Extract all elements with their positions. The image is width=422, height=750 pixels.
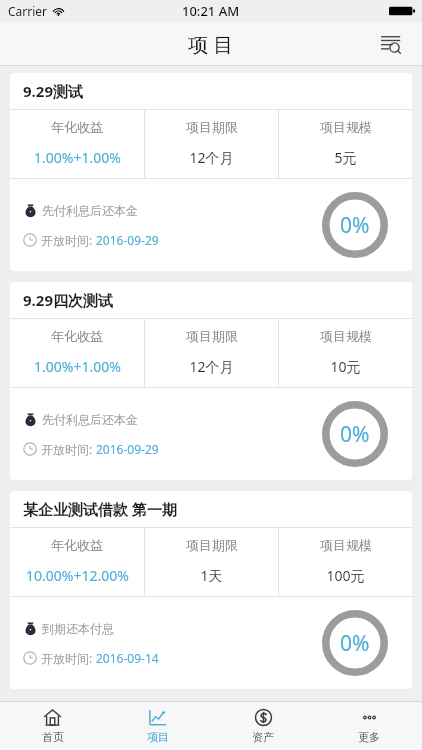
- staticText: 项目期限: [186, 328, 238, 344]
- staticText: 年化收益: [51, 537, 103, 553]
- staticText: 项 目: [188, 31, 234, 58]
- staticText: 项目规模: [320, 328, 372, 344]
- button[interactable]: 更多: [316, 702, 422, 750]
- staticText: 开放时间:: [41, 232, 96, 248]
- staticText: 10.00%+12.00%: [26, 566, 129, 585]
- staticText: 1.00%+1.00%: [34, 148, 121, 167]
- staticText: 更多: [358, 730, 380, 744]
- staticText: 0%: [340, 211, 370, 240]
- staticText: Carrier: [8, 3, 48, 19]
- staticText: 12个月: [189, 357, 234, 376]
- staticText: 开放时间:: [41, 441, 96, 457]
- staticText: 先付利息后还本金: [42, 412, 138, 427]
- button[interactable]: Filter and search: [374, 27, 408, 61]
- staticText: 100元: [326, 566, 365, 585]
- staticText: 首页: [42, 730, 64, 744]
- staticText: 资产: [252, 730, 274, 744]
- staticText: 10元: [330, 357, 361, 376]
- staticText: 年化收益: [51, 119, 103, 135]
- staticText: 0%: [340, 420, 370, 449]
- button[interactable]: 某企业测试借款 第一期: [10, 491, 412, 689]
- staticText: 项目规模: [320, 119, 372, 135]
- staticText: 项目期限: [186, 119, 238, 135]
- staticText: 12个月: [189, 148, 234, 167]
- staticText: 2016-09-29: [96, 232, 159, 248]
- staticText: 1.00%+1.00%: [34, 357, 121, 376]
- button[interactable]: 项目: [105, 702, 210, 750]
- staticText: 2016-09-29: [96, 441, 159, 457]
- staticText: 开放时间:: [41, 650, 96, 666]
- staticText: 5元: [334, 148, 357, 167]
- staticText: 年化收益: [51, 328, 103, 344]
- staticText: 9.29四次测试: [23, 290, 113, 310]
- staticText: 到期还本付息: [42, 621, 114, 636]
- button[interactable]: 首页: [0, 702, 105, 750]
- button[interactable]: 资产: [210, 702, 316, 750]
- staticText: 项目: [147, 730, 169, 744]
- staticText: 项目期限: [186, 537, 238, 553]
- staticText: 先付利息后还本金: [42, 203, 138, 218]
- button[interactable]: 9.29四次测试: [10, 282, 412, 480]
- staticText: 0%: [340, 629, 370, 658]
- staticText: 某企业测试借款 第一期: [23, 499, 177, 519]
- staticText: 10:21 AM: [182, 2, 240, 20]
- staticText: 项目规模: [320, 537, 372, 553]
- staticText: 2016-09-14: [96, 650, 159, 666]
- staticText: 9.29测试: [23, 81, 83, 101]
- button[interactable]: 9.29测试: [10, 73, 412, 271]
- staticText: 1天: [200, 566, 223, 585]
